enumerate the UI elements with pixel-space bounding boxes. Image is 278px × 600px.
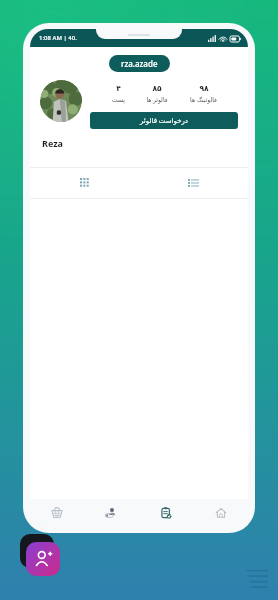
staticText: rza.azade [121, 58, 158, 69]
staticText: 1:08 AM | 40. [39, 34, 77, 42]
staticText: درخواست فالوئر [140, 116, 188, 126]
staticText: ۸۵ [152, 84, 162, 93]
button[interactable]: درخواست فالوئر [90, 112, 238, 129]
staticText: فالوئر ها [146, 96, 168, 104]
button[interactable]: Profile [84, 499, 138, 527]
button[interactable]: List view [139, 168, 248, 198]
button[interactable]: Home [193, 499, 248, 527]
button[interactable]: Follower app icon [26, 542, 60, 576]
button[interactable]: Tasks [138, 499, 193, 527]
staticText: پست [112, 96, 125, 103]
button[interactable]: rza.azade [109, 55, 170, 72]
button[interactable]: Grid view [30, 168, 139, 198]
staticText: ۹۸ [199, 84, 209, 93]
button[interactable]: Profile photo [40, 80, 82, 122]
staticText: فالوئینگ ها [190, 96, 217, 104]
staticText: Reza [42, 137, 64, 149]
button[interactable]: Cart [30, 499, 84, 527]
staticText: ۴ [116, 84, 121, 93]
